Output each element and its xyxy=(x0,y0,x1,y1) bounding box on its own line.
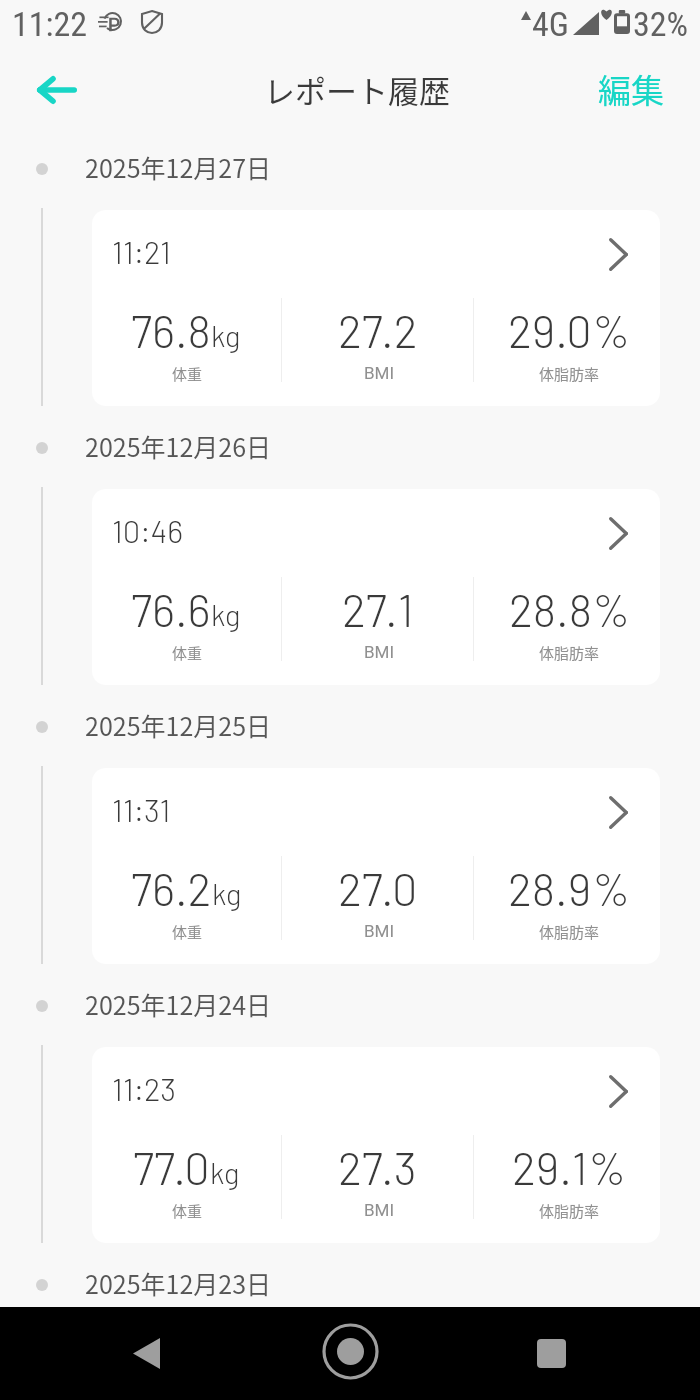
staticText: 体脂肪率 xyxy=(539,642,600,664)
staticText: 11:21 xyxy=(112,233,171,270)
button[interactable]: Back xyxy=(26,66,88,114)
staticText: BMI xyxy=(364,921,395,941)
staticText: BMI xyxy=(364,642,395,662)
staticText: kg xyxy=(211,597,241,632)
staticText: 編集 xyxy=(598,65,664,113)
staticText: 29.1 xyxy=(512,1140,588,1194)
button[interactable]: Home xyxy=(320,1321,380,1381)
button[interactable]: 11:21 xyxy=(92,210,660,406)
staticText: 29.0 xyxy=(508,303,592,357)
staticText: 76.8 xyxy=(131,303,211,357)
other: Open detail xyxy=(588,1061,648,1121)
staticText: 28.8 xyxy=(509,582,592,636)
staticText: 27.3 xyxy=(338,1140,417,1194)
staticText: BMI xyxy=(364,363,395,383)
staticText: % xyxy=(588,1140,627,1194)
staticText: 体脂肪率 xyxy=(539,1200,600,1222)
staticText: 2025年12月24日 xyxy=(85,986,272,1022)
button[interactable]: 編集 xyxy=(588,59,674,119)
staticText: 77.0 xyxy=(133,1140,210,1194)
staticText: kg xyxy=(211,318,241,353)
staticText: 体脂肪率 xyxy=(539,363,600,385)
button[interactable]: 11:31 xyxy=(92,768,660,964)
staticText: 体重 xyxy=(172,642,203,664)
staticText: 27.0 xyxy=(338,861,418,915)
staticText: 11:23 xyxy=(112,1070,177,1107)
staticText: kg xyxy=(210,1155,240,1190)
staticText: 2025年12月25日 xyxy=(85,707,272,743)
staticText: 10:46 xyxy=(112,512,183,549)
staticText: 76.6 xyxy=(131,582,211,636)
staticText: 体脂肪率 xyxy=(539,921,600,943)
staticText: 4G xyxy=(532,4,569,44)
button[interactable]: 11:23 xyxy=(92,1047,660,1243)
staticText: 11:31 xyxy=(112,791,171,828)
staticText: 体重 xyxy=(172,1200,203,1222)
button[interactable]: 10:46 xyxy=(92,489,660,685)
staticText: 11:22 xyxy=(12,4,88,44)
staticText: 2025年12月26日 xyxy=(85,428,272,464)
staticText: % xyxy=(592,582,631,636)
staticText: BMI xyxy=(364,1200,395,1220)
staticText: % xyxy=(592,861,631,915)
staticText: % xyxy=(592,303,631,357)
other: Power saving xyxy=(98,12,122,31)
other: Open detail xyxy=(588,503,648,563)
other: Open detail xyxy=(588,782,648,842)
staticText: 体重 xyxy=(172,921,203,943)
button[interactable]: Back xyxy=(116,1323,176,1383)
button[interactable]: Recent apps xyxy=(521,1323,581,1383)
other: Open detail xyxy=(588,224,648,284)
staticText: 27.1 xyxy=(342,582,414,636)
staticText: 2025年12月23日 xyxy=(85,1265,272,1301)
staticText: 32% xyxy=(633,4,689,44)
staticText: P xyxy=(108,13,120,32)
staticText: kg xyxy=(212,876,242,911)
staticText: 28.9 xyxy=(508,861,592,915)
staticText: 76.2 xyxy=(131,861,212,915)
staticText: 体重 xyxy=(172,363,203,385)
staticText: 27.2 xyxy=(338,303,418,357)
staticText: レポート履歴 xyxy=(264,67,450,112)
staticText: 2025年12月27日 xyxy=(85,149,272,185)
